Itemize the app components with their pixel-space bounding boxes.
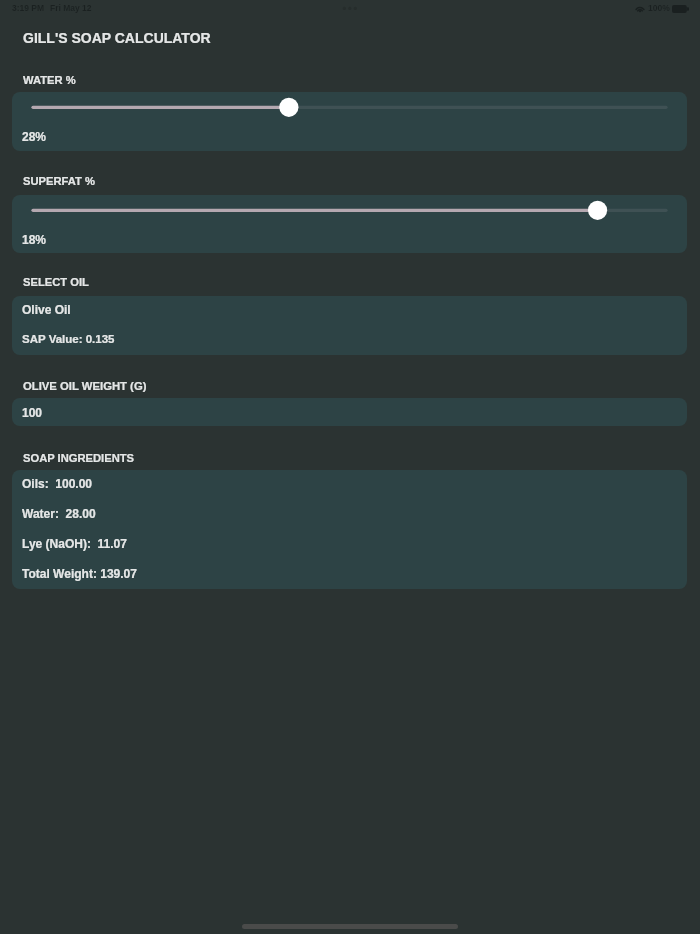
staticText: Olive Oil [22,303,71,316]
staticText: WATER % [23,74,76,87]
button[interactable]: Olive Oil [12,296,687,355]
staticText: 18% [22,233,47,246]
staticText: 100% [648,3,670,12]
staticText: SOAP INGREDIENTS [23,452,135,465]
staticText: Lye (NaOH): 11.07 [22,537,127,550]
staticText: SAP Value: 0.135 [22,333,115,346]
staticText: SELECT OIL [23,276,89,289]
staticText: SUPERFAT % [23,175,95,188]
staticText: 3:19 PM [12,3,45,12]
staticText: Water: 28.00 [22,507,96,520]
button[interactable]: Water percentage slider [12,92,687,151]
staticText: Oils: 100.00 [22,477,93,490]
staticText: GILL'S SOAP CALCULATOR [23,30,211,46]
staticText: 100 [22,406,43,419]
button[interactable]: Superfat percentage slider [12,195,687,253]
staticText: 28% [22,130,47,143]
staticText: Fri May 12 [50,3,92,12]
other: Battery full [672,5,689,13]
staticText: OLIVE OIL WEIGHT (G) [23,380,147,393]
button[interactable]: Oils: 100.00 [12,470,687,589]
other: Wi-Fi connected [635,4,645,12]
button[interactable]: 100 [12,398,687,426]
staticText: Total Weight: 139.07 [22,567,137,580]
